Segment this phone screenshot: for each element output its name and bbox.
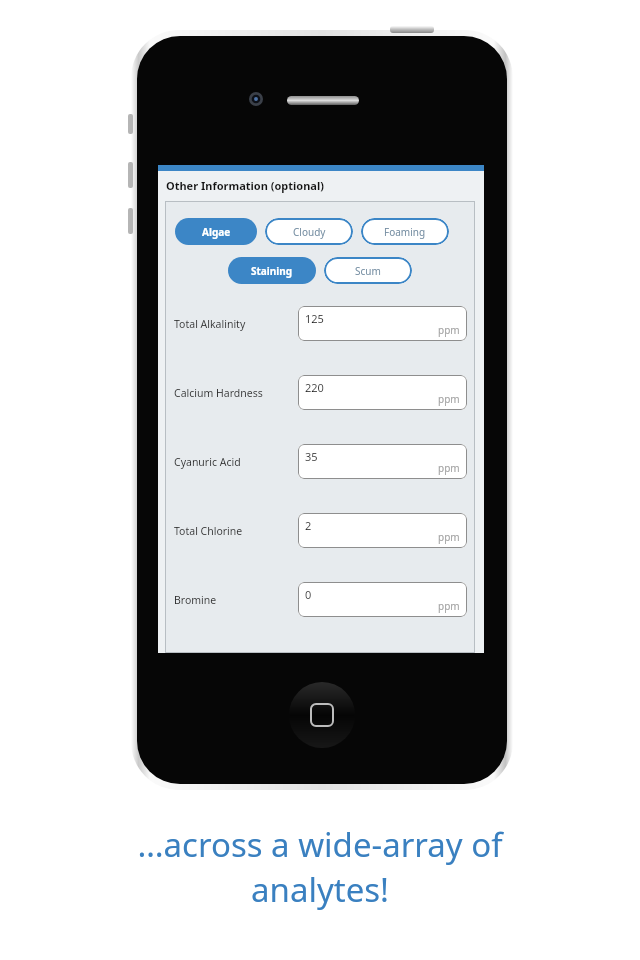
staticText: Other Information (optional) <box>166 178 324 193</box>
button[interactable]: Foaming <box>361 218 449 245</box>
staticText: Total Alkalinity <box>174 317 298 331</box>
staticText: Cloudy <box>293 225 326 239</box>
staticText: Scum <box>355 264 381 278</box>
staticText: Total Chlorine <box>174 524 298 538</box>
staticText: 35 <box>305 449 318 464</box>
staticText: 220 <box>305 380 324 395</box>
staticText: Cyanuric Acid <box>174 455 298 469</box>
button[interactable]: Volume down <box>128 208 133 234</box>
button[interactable]: 2 <box>298 513 467 548</box>
staticText: ppm <box>438 461 460 475</box>
staticText: Foaming <box>384 225 426 239</box>
button[interactable]: 0 <box>298 582 467 617</box>
staticText: ppm <box>438 392 460 406</box>
staticText: 0 <box>305 587 312 602</box>
button[interactable]: Staining <box>228 257 316 284</box>
button[interactable]: Scum <box>324 257 412 284</box>
staticText: 2 <box>305 518 312 533</box>
button[interactable]: Algae <box>175 218 257 245</box>
button[interactable]: Volume up <box>128 162 133 188</box>
button[interactable]: Power <box>390 26 434 33</box>
staticText: ppm <box>438 530 460 544</box>
staticText: Staining <box>251 264 293 278</box>
button[interactable]: Cloudy <box>265 218 353 245</box>
button[interactable]: 35 <box>298 444 467 479</box>
button[interactable]: 125 <box>298 306 467 341</box>
button[interactable]: Ring silent switch <box>128 114 133 134</box>
button[interactable]: Home <box>289 682 355 748</box>
staticText: Algae <box>202 225 231 239</box>
staticText: 125 <box>305 311 324 326</box>
staticText: …across a wide-array of analytes! <box>0 822 640 912</box>
staticText: ppm <box>438 599 460 613</box>
button[interactable]: 220 <box>298 375 467 410</box>
staticText: ppm <box>438 323 460 337</box>
staticText: Calcium Hardness <box>174 386 298 400</box>
staticText: Bromine <box>174 593 298 607</box>
